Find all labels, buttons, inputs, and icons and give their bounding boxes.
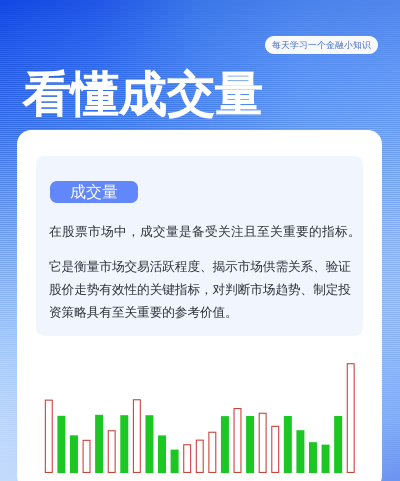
button[interactable]: 每天学习一个金融小知识 (265, 36, 378, 54)
staticText: 每天学习一个金融小知识 (272, 39, 371, 51)
staticText: 资策略具有至关重要的参考价值。 (49, 304, 238, 320)
staticText: 成交量 (70, 182, 118, 202)
staticText: 在股票市场中，成交量是备受关注且至关重要的指标。 (49, 223, 361, 239)
staticText: 股价走势有效性的关键指标，对判断市场趋势、制定投 (49, 281, 351, 297)
staticText: 它是衡量市场交易活跃程度、揭示市场供需关系、验证 (49, 258, 351, 274)
staticText: 看懂成交量 (22, 65, 262, 125)
